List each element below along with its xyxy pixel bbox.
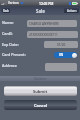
button[interactable]: CHARGE ANYWHERE <box>27 20 77 27</box>
button[interactable]: 01/20 <box>44 41 78 48</box>
button[interactable]: Actions <box>64 8 79 13</box>
staticText: Address: <box>2 63 18 68</box>
staticText: Actions <box>67 9 77 13</box>
button[interactable]: Options <box>0 76 80 81</box>
staticText: Submit <box>33 89 48 94</box>
button[interactable]: Submit <box>4 86 77 96</box>
staticText: 41XXXXXXXXXXX111 <box>29 33 58 37</box>
button[interactable] <box>45 63 77 71</box>
button[interactable]: Back <box>1 8 10 13</box>
staticText: Sale <box>36 8 45 14</box>
staticText: 12:03 PM <box>39 1 54 5</box>
staticText: ON <box>59 53 64 57</box>
staticText: 01/20 <box>57 43 66 47</box>
staticText: Name: <box>2 20 14 25</box>
staticText: Card Present: <box>2 52 26 57</box>
staticText: CHARGE ANYWHERE <box>29 22 59 26</box>
staticText: Options <box>34 77 47 81</box>
staticText: Cancel <box>34 103 48 108</box>
button[interactable]: 41XXXXXXXXXXX111 <box>27 31 78 38</box>
staticText: Back <box>3 9 10 13</box>
staticText: Verizon <box>8 1 19 5</box>
button[interactable]: Cancel <box>4 100 77 110</box>
button[interactable]: ON <box>54 52 77 58</box>
staticText: Exp Date: <box>2 42 19 47</box>
staticText: CardI: <box>2 31 13 36</box>
